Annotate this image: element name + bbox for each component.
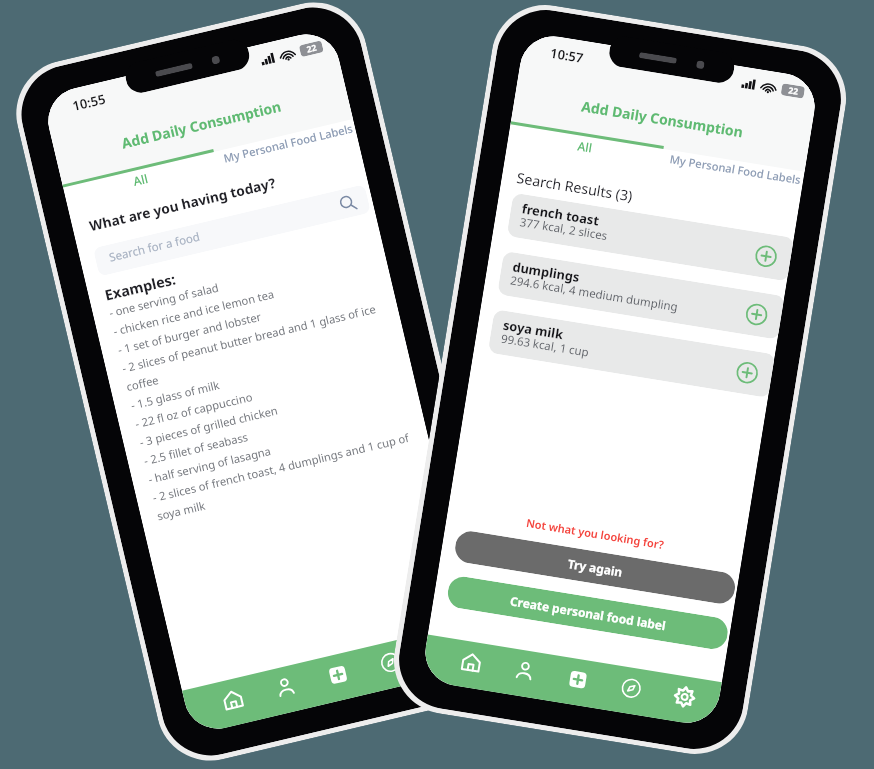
button[interactable]: Home: [214, 681, 250, 717]
staticText: - one serving of salad - chicken rice an…: [107, 244, 420, 523]
button[interactable]: soya milk: [488, 309, 775, 398]
button[interactable]: Home: [454, 645, 488, 679]
button[interactable]: Add: [560, 662, 595, 696]
button[interactable]: Explore: [372, 644, 408, 680]
staticText: All: [577, 137, 594, 156]
staticText: Not what you looking for?: [447, 502, 743, 565]
staticText: What are you having today?: [87, 173, 278, 235]
staticText: Try again: [567, 555, 624, 580]
button[interactable]: Profile: [267, 669, 303, 705]
button[interactable]: My Personal Food Labels: [658, 150, 804, 194]
button[interactable]: Add dumplings: [742, 300, 770, 328]
staticText: 10:57: [549, 44, 585, 67]
button[interactable]: Add french toast: [752, 242, 779, 269]
staticText: french toast: [521, 199, 601, 229]
staticText: Search Results (3): [515, 168, 634, 206]
button[interactable]: Add soya milk: [733, 358, 760, 386]
staticText: soya milk: [502, 316, 565, 342]
staticText: 294.6 kcal, 4 medium dumpling: [509, 272, 680, 315]
staticText: All: [132, 170, 150, 189]
staticText: Add Daily Consumption: [514, 86, 811, 152]
staticText: Create personal food label: [509, 592, 667, 633]
button[interactable]: Add: [319, 656, 355, 693]
button[interactable]: All: [507, 126, 663, 173]
staticText: My Personal Food Labels: [222, 120, 355, 166]
staticText: Search for a food: [108, 229, 202, 266]
button[interactable]: Create personal food label: [445, 574, 730, 651]
staticText: My Personal Food Labels: [669, 151, 802, 187]
staticText: 10:55: [70, 90, 108, 115]
button[interactable]: Profile: [507, 653, 541, 688]
button[interactable]: My Personal Food Labels: [212, 120, 358, 175]
staticText: dumplings: [511, 257, 581, 285]
button[interactable]: Explore: [614, 670, 648, 705]
staticText: 377 kcal, 2 slices: [519, 214, 609, 244]
staticText: 22: [305, 42, 318, 56]
button[interactable]: Search: [334, 189, 360, 216]
button[interactable]: All: [63, 154, 219, 211]
button[interactable]: Settings: [424, 632, 461, 668]
staticText: Add Daily Consumption: [54, 81, 348, 168]
button[interactable]: [93, 184, 371, 277]
staticText: Examples:: [103, 269, 178, 306]
button[interactable]: french toast: [506, 193, 794, 281]
staticText: 99.63 kcal, 1 cup: [500, 331, 590, 361]
staticText: 22: [787, 84, 799, 98]
button[interactable]: Try again: [453, 529, 737, 606]
button[interactable]: Settings: [667, 679, 701, 713]
button[interactable]: dumplings: [497, 251, 784, 340]
